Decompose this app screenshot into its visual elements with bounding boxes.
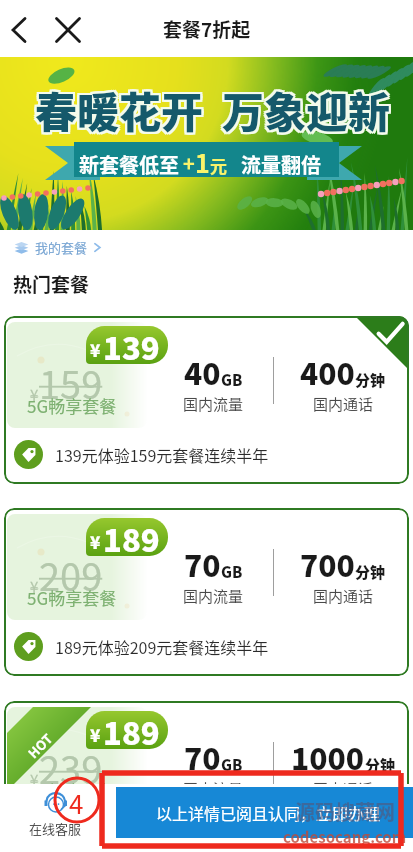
staticText: 万象迎新 [224, 79, 393, 140]
staticText: 春暖花开 [35, 79, 204, 140]
staticText: GB [221, 369, 243, 391]
staticText: 国内流量 [183, 778, 244, 800]
staticText: 分钟 [355, 369, 386, 391]
staticText: ¥ [30, 384, 39, 406]
staticText: 套餐7折起 [163, 15, 251, 43]
staticText: 分钟 [355, 561, 386, 583]
staticText: 1 [195, 144, 210, 180]
staticText: 4 [69, 784, 84, 822]
staticText: 5G畅享套餐 [27, 778, 117, 803]
staticText: 1000 [291, 735, 365, 778]
staticText: 春暖花开 [35, 77, 204, 138]
staticText: + [183, 148, 195, 177]
staticText: 流量翻倍 [241, 150, 321, 179]
staticText: 我的套餐 [35, 238, 88, 257]
staticText: ¥ [90, 337, 101, 362]
staticText: 139元体验159元套餐连续半年 [55, 443, 269, 466]
button[interactable]: HOT [4, 701, 409, 852]
staticText: 万象迎新 [222, 79, 391, 140]
staticText: 万象迎新 [220, 77, 389, 138]
staticText: 189 [103, 711, 160, 747]
staticText: 春暖花开 [33, 77, 202, 138]
staticText: 万象迎新 [222, 81, 391, 142]
staticText: 159 [39, 355, 103, 410]
staticText: 元 [210, 153, 227, 178]
staticText: 春暖花开 [37, 81, 206, 142]
staticText: codesocang.com [283, 826, 407, 848]
staticText: 189 [103, 518, 160, 554]
staticText: 国内流量 [183, 585, 244, 607]
staticText: 万象迎新 [224, 81, 393, 142]
staticText: 5G畅享套餐 [27, 393, 117, 418]
button[interactable]: 我的套餐 [14, 238, 103, 257]
staticText: 热门套餐 [13, 270, 90, 298]
button[interactable]: ¥ [4, 316, 409, 484]
staticText: ¥ [90, 722, 101, 747]
staticText: 国内通话 [313, 585, 374, 607]
staticText: ¥ [30, 769, 39, 791]
staticText: 源码搜藏网 [295, 797, 395, 826]
staticText: ¥ [30, 576, 39, 598]
staticText: 189元体验239元套餐连续半年 [55, 828, 269, 851]
staticText: ¥ [90, 529, 101, 554]
staticText: 以上详情已阅且认同，立即办理 [156, 801, 381, 824]
staticText: 万象迎新 [220, 79, 389, 140]
button[interactable]: Close [47, 9, 89, 51]
staticText: 分钟 [365, 754, 396, 776]
staticText: 国内通话 [313, 778, 374, 800]
staticText: 139 [103, 326, 160, 362]
staticText: 700 [300, 542, 355, 585]
staticText: 400 [300, 350, 355, 393]
staticText: GB [221, 754, 243, 776]
staticText: HOT [23, 729, 57, 762]
staticText: 5G畅享套餐 [27, 585, 117, 610]
button[interactable]: 以上详情已阅且认同，立即办理 [116, 787, 413, 838]
staticText: 国内流量 [183, 393, 244, 415]
staticText: 万象迎新 [220, 81, 389, 142]
staticText: 国内通话 [313, 393, 374, 415]
staticText: 70 [184, 735, 221, 778]
button[interactable]: Back [0, 9, 37, 51]
staticText: 在线客服 [29, 819, 82, 838]
button[interactable]: 在线客服 [18, 784, 92, 852]
staticText: 40 [184, 350, 221, 393]
staticText: 春暖花开 [37, 79, 206, 140]
staticText: 春暖花开 [37, 77, 206, 138]
staticText: 春暖花开 [35, 81, 204, 142]
staticText: 189元体验209元套餐连续半年 [55, 635, 269, 658]
staticText: 新套餐低至 [79, 150, 179, 179]
staticText: GB [221, 561, 243, 583]
staticText: 万象迎新 [222, 77, 391, 138]
staticText: 春暖花开 [33, 79, 202, 140]
staticText: 春暖花开 [33, 81, 202, 142]
staticText: 70 [184, 542, 221, 585]
staticText: 万象迎新 [224, 77, 393, 138]
staticText: 239 [39, 740, 103, 795]
staticText: 209 [39, 547, 103, 602]
button[interactable]: ¥ [4, 508, 409, 676]
